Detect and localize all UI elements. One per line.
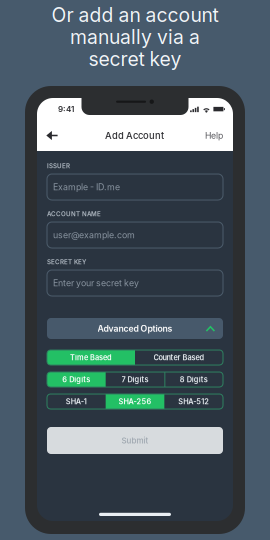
staticText: ISSUER [47,162,70,170]
button[interactable]: Help [191,122,223,148]
staticText: SHA-1 [66,397,87,406]
staticText: Advanced Options [97,323,172,334]
staticText: SECRET KEY [47,258,86,266]
button[interactable]: 6 Digits [47,372,106,387]
staticText: 7 Digits [121,375,148,384]
button[interactable]: Advanced Options [47,318,223,339]
staticText: Add Account [105,130,164,141]
button[interactable]: SHA-256 [106,394,164,409]
staticText: secret key [88,47,181,71]
staticText: SHA-512 [178,397,209,406]
staticText: Counter Based [153,353,204,362]
button[interactable]: Example - ID.me [47,174,223,200]
button[interactable]: 8 Digits [164,372,223,387]
staticText: user@example.com [53,230,135,240]
staticText: Example - ID.me [53,182,120,192]
staticText: Submit [121,436,148,445]
staticText: Enter your secret key [53,278,139,288]
staticText: Or add an account [51,3,218,27]
button[interactable]: SHA-512 [164,394,223,409]
staticText: 6 Digits [62,375,90,384]
button[interactable]: Submit [47,427,223,454]
button[interactable]: 7 Digits [106,372,164,387]
staticText: Help [205,130,223,141]
button[interactable]: user@example.com [47,222,223,248]
button[interactable]: Counter Based [135,350,223,365]
staticText: 9:41 [58,104,74,114]
button[interactable]: Enter your secret key [47,270,223,296]
button[interactable]: Back [46,122,78,148]
staticText: SHA-256 [118,397,151,406]
staticText: ACCOUNT NAME [47,210,101,218]
staticText: Time Based [70,353,112,362]
staticText: manually via a [70,25,200,49]
staticText: 8 Digits [180,375,208,384]
button[interactable]: Time Based [47,350,135,365]
button[interactable]: SHA-1 [47,394,106,409]
